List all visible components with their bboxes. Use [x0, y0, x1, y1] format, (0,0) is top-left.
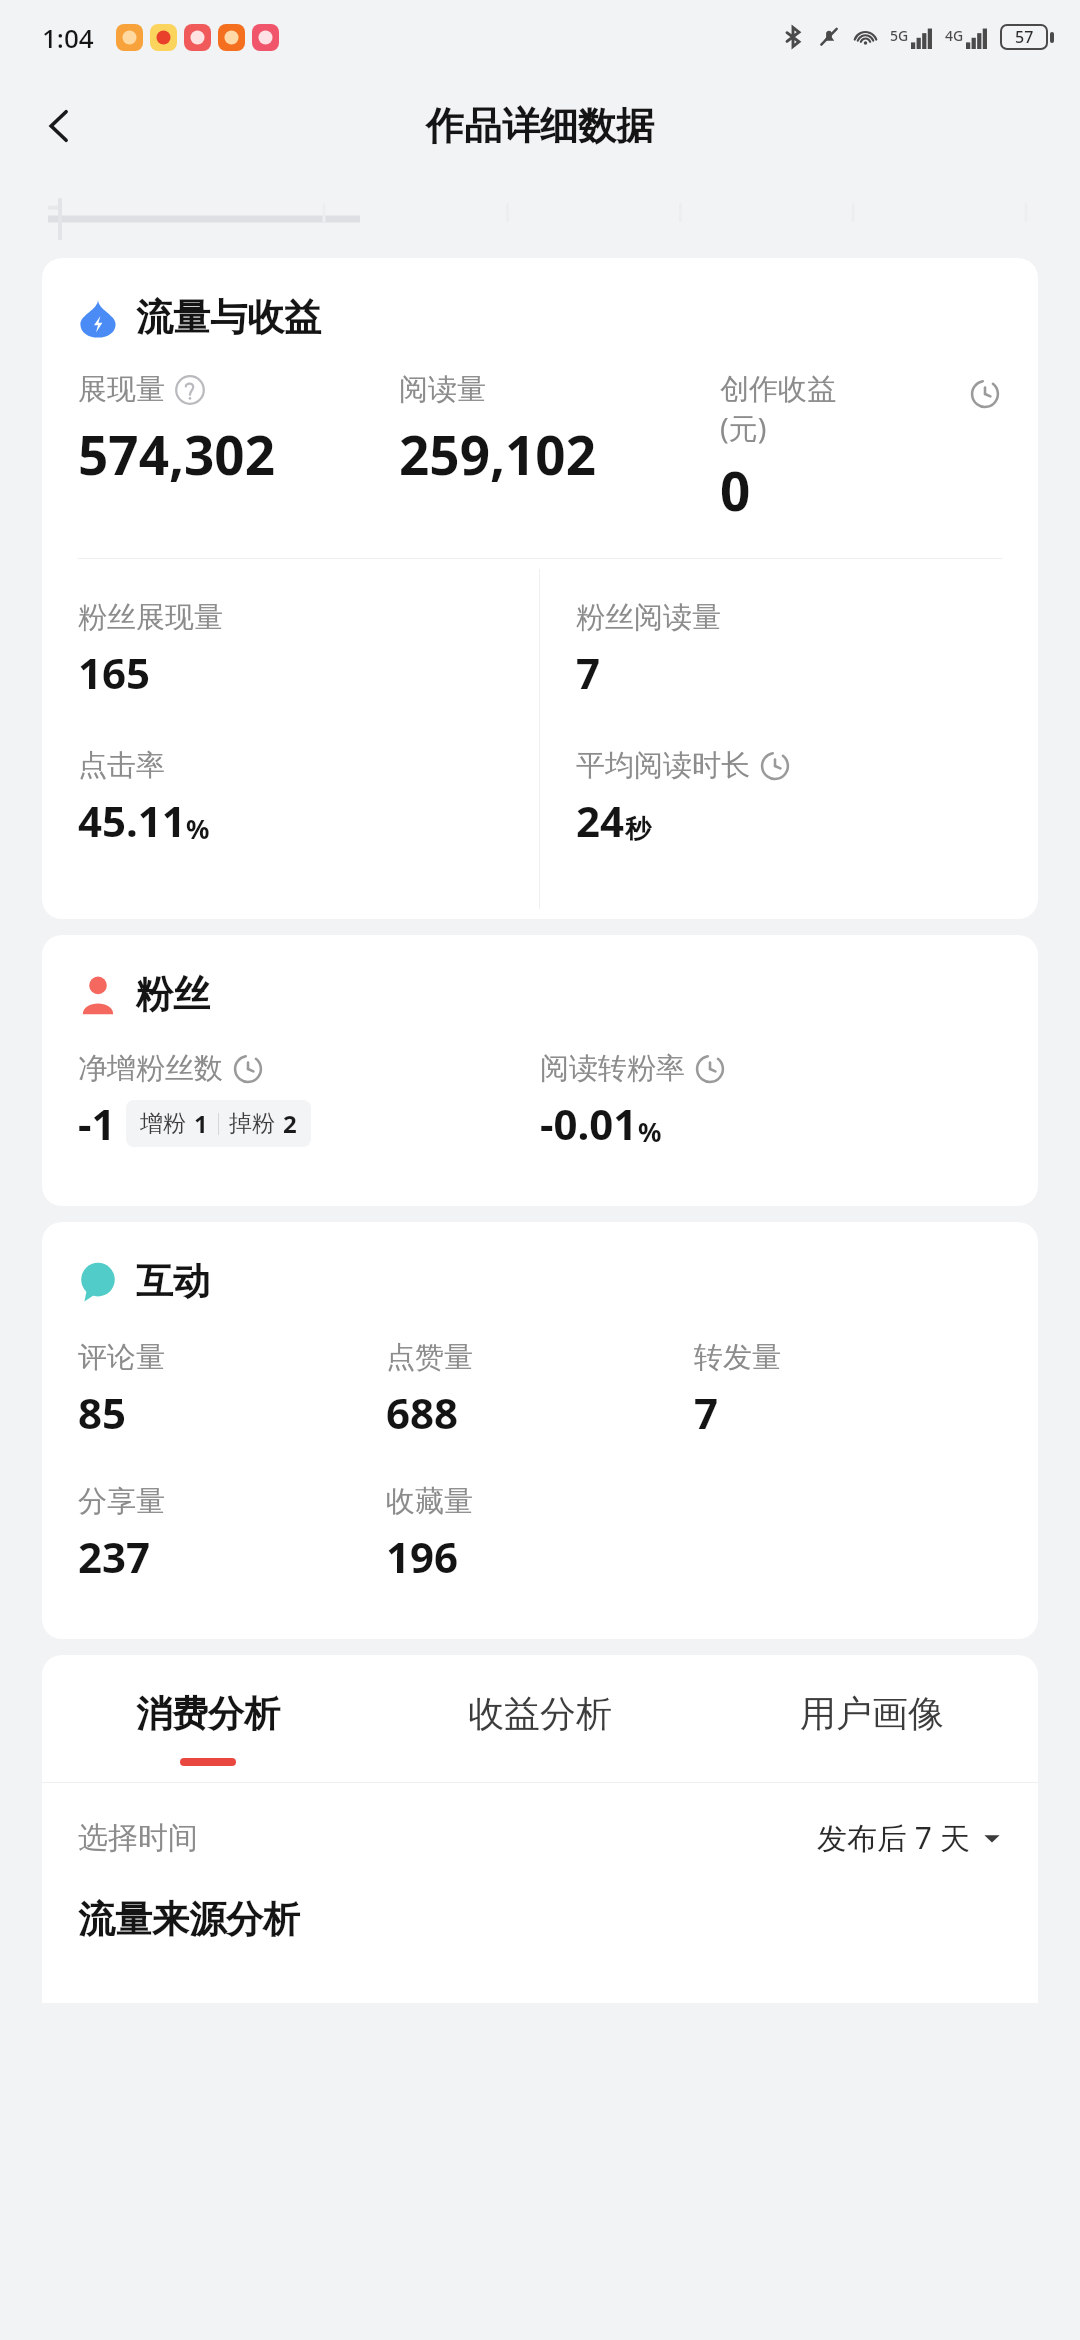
staticText: 点赞量: [386, 1339, 473, 1376]
staticText: 收藏量: [386, 1483, 473, 1520]
staticText: 消费分析: [136, 1691, 280, 1736]
button[interactable]: 收益分析: [374, 1691, 706, 1766]
staticText: 收益分析: [468, 1691, 612, 1736]
button[interactable]: 消费分析: [42, 1691, 374, 1766]
staticText: 展现量: [78, 371, 165, 408]
staticText: 分享量: [78, 1483, 165, 1520]
staticText: 流量与收益: [136, 294, 321, 341]
staticText: 24: [576, 792, 625, 849]
staticText: -0.01: [540, 1095, 638, 1152]
staticText: 平均阅读时长: [576, 747, 750, 784]
staticText: 阅读转粉率: [540, 1050, 685, 1087]
staticText: %: [186, 811, 210, 846]
staticText: (元): [720, 408, 767, 448]
staticText: 互动: [136, 1258, 210, 1305]
staticText: 流量来源分析: [78, 1896, 300, 1943]
staticText: 0: [720, 454, 751, 526]
staticText: 秒: [625, 813, 651, 846]
staticText: 作品详细数据: [426, 102, 654, 150]
staticText: 粉丝展现量: [78, 599, 223, 636]
staticText: 增粉: [140, 1109, 186, 1138]
staticText: -1: [78, 1095, 116, 1152]
staticText: 阅读量: [399, 371, 486, 408]
staticText: 创作收益: [720, 371, 836, 408]
staticText: 1: [194, 1107, 208, 1140]
button[interactable]: Refresh: [968, 377, 1002, 411]
staticText: 评论量: [78, 1339, 165, 1376]
staticText: 688: [386, 1384, 459, 1441]
staticText: 196: [386, 1528, 459, 1585]
staticText: 259,102: [399, 418, 597, 490]
staticText: 选择时间: [78, 1819, 198, 1857]
staticText: 净增粉丝数: [78, 1050, 223, 1087]
staticText: 点击率: [78, 747, 165, 784]
staticText: 237: [78, 1528, 151, 1585]
staticText: 粉丝阅读量: [576, 599, 721, 636]
staticText: 5G: [890, 26, 909, 45]
staticText: 165: [78, 644, 151, 701]
staticText: 574,302: [78, 418, 276, 490]
staticText: 转发量: [694, 1339, 781, 1376]
staticText: 掉粉: [229, 1109, 275, 1138]
staticText: 45.11: [78, 792, 186, 849]
staticText: 4G: [945, 26, 964, 45]
staticText: 57: [1015, 26, 1034, 48]
staticText: 85: [78, 1384, 127, 1441]
staticText: 用户画像: [800, 1691, 944, 1736]
staticText: 粉丝: [136, 971, 210, 1018]
button[interactable]: 选择时间: [78, 1817, 1002, 1858]
staticText: 发布后 7 天: [817, 1817, 970, 1858]
staticText: 2: [283, 1107, 297, 1140]
staticText: %: [638, 1114, 662, 1149]
button[interactable]: 用户画像: [706, 1691, 1038, 1766]
button[interactable]: Back: [24, 90, 96, 162]
staticText: 7: [576, 644, 601, 701]
staticText: 1:04: [42, 20, 94, 55]
staticText: 7: [694, 1384, 719, 1441]
